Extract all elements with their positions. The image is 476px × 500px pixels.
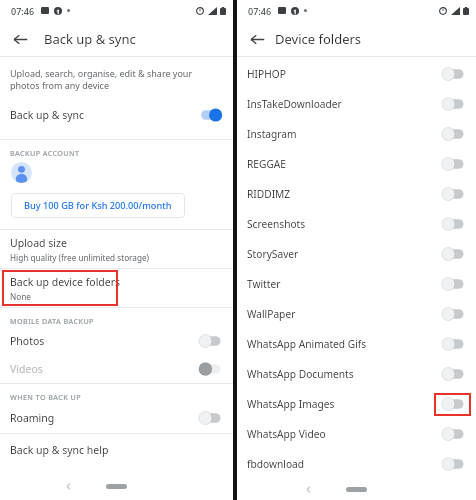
button[interactable]: WallPaper bbox=[237, 299, 476, 329]
button[interactable]: Toggle bbox=[441, 246, 466, 262]
staticText: RIDDIMZ bbox=[247, 187, 441, 201]
button[interactable]: Navigate up bbox=[6, 25, 34, 53]
staticText: 07:46 bbox=[11, 5, 35, 17]
button[interactable]: Account avatar bbox=[11, 162, 32, 183]
button[interactable]: Back up device folders bbox=[0, 269, 233, 307]
staticText: InsTakeDownloader bbox=[247, 97, 441, 111]
button[interactable]: StorySaver bbox=[237, 239, 476, 269]
button[interactable]: Toggle bbox=[441, 426, 466, 442]
staticText: WhatsApp Video bbox=[247, 427, 441, 441]
staticText: None bbox=[10, 291, 31, 302]
staticText: BACKUP ACCOUNT bbox=[10, 148, 80, 158]
button[interactable]: Instagram bbox=[237, 119, 476, 149]
button[interactable]: Home bbox=[346, 487, 367, 492]
button[interactable]: Toggle bbox=[441, 126, 466, 142]
button[interactable]: Back bbox=[63, 481, 74, 492]
button[interactable]: Navigate up bbox=[243, 25, 271, 53]
button[interactable]: Toggle bbox=[198, 361, 223, 377]
button[interactable]: Toggle bbox=[441, 276, 466, 292]
button[interactable]: Toggle bbox=[441, 216, 466, 232]
button[interactable]: fbdownload bbox=[237, 449, 476, 479]
button[interactable]: Twitter bbox=[237, 269, 476, 299]
staticText: Back up & sync bbox=[44, 30, 136, 48]
staticText: WhatsApp Images bbox=[247, 397, 441, 411]
button[interactable]: Toggle bbox=[441, 186, 466, 202]
button[interactable]: Toggle bbox=[441, 336, 466, 352]
staticText: Upload, search, organise, edit & share y… bbox=[10, 67, 221, 91]
staticText: Instagram bbox=[247, 127, 441, 141]
button[interactable]: Home bbox=[106, 484, 127, 489]
staticText: WhatsApp Animated Gifs bbox=[247, 337, 441, 351]
staticText: Screenshots bbox=[247, 217, 441, 231]
button[interactable]: Toggle bbox=[441, 306, 466, 322]
button[interactable]: Videos bbox=[0, 355, 233, 383]
button[interactable]: Toggle bbox=[198, 333, 223, 349]
button[interactable]: Toggle bbox=[441, 366, 466, 382]
button[interactable]: Buy 100 GB for Ksh 200.00/month bbox=[11, 193, 185, 218]
staticText: Back up & sync bbox=[10, 108, 198, 122]
staticText: MOBILE DATA BACKUP bbox=[10, 316, 94, 326]
staticText: High quality (free unlimited storage) bbox=[10, 252, 150, 263]
staticText: StorySaver bbox=[247, 247, 441, 261]
staticText: Upload size bbox=[10, 236, 67, 250]
button[interactable]: Toggle bbox=[198, 410, 223, 426]
button[interactable]: Back bbox=[303, 484, 314, 495]
staticText: WHEN TO BACK UP bbox=[10, 392, 81, 402]
staticText: fbdownload bbox=[247, 457, 441, 471]
staticText: REGGAE bbox=[247, 157, 441, 171]
button[interactable]: InsTakeDownloader bbox=[237, 89, 476, 119]
staticText: Back up & sync help bbox=[10, 443, 109, 457]
button[interactable]: Photos bbox=[0, 327, 233, 355]
button[interactable]: RIDDIMZ bbox=[237, 179, 476, 209]
button[interactable]: Upload size bbox=[0, 230, 233, 268]
staticText: Videos bbox=[10, 362, 198, 376]
button[interactable]: WhatsApp Video bbox=[237, 419, 476, 449]
button[interactable]: Back up & sync help bbox=[0, 434, 233, 466]
staticText: 07:46 bbox=[248, 5, 272, 17]
button[interactable]: Toggle bbox=[441, 156, 466, 172]
staticText: WallPaper bbox=[247, 307, 441, 321]
button[interactable]: HIPHOP bbox=[237, 59, 476, 89]
button[interactable]: Toggle bbox=[198, 107, 223, 123]
staticText: Twitter bbox=[247, 277, 441, 291]
staticText: Buy 100 GB for Ksh 200.00/month bbox=[24, 199, 172, 212]
button[interactable]: WhatsApp Animated Gifs bbox=[237, 329, 476, 359]
button[interactable]: Toggle bbox=[441, 66, 466, 82]
staticText: HIPHOP bbox=[247, 67, 441, 81]
button[interactable]: Screenshots bbox=[237, 209, 476, 239]
button[interactable]: Back up & sync bbox=[0, 99, 233, 131]
button[interactable]: Toggle bbox=[441, 396, 466, 412]
button[interactable]: Toggle bbox=[441, 456, 466, 472]
staticText: Back up device folders bbox=[10, 275, 121, 289]
staticText: Roaming bbox=[10, 411, 198, 425]
button[interactable]: WhatsApp Images bbox=[237, 389, 476, 419]
staticText: Device folders bbox=[275, 30, 362, 48]
staticText: Photos bbox=[10, 334, 198, 348]
staticText: WhatsApp Documents bbox=[247, 367, 441, 381]
button[interactable]: WhatsApp Documents bbox=[237, 359, 476, 389]
button[interactable]: Toggle bbox=[441, 96, 466, 112]
button[interactable]: Roaming bbox=[0, 403, 233, 433]
button[interactable]: REGGAE bbox=[237, 149, 476, 179]
